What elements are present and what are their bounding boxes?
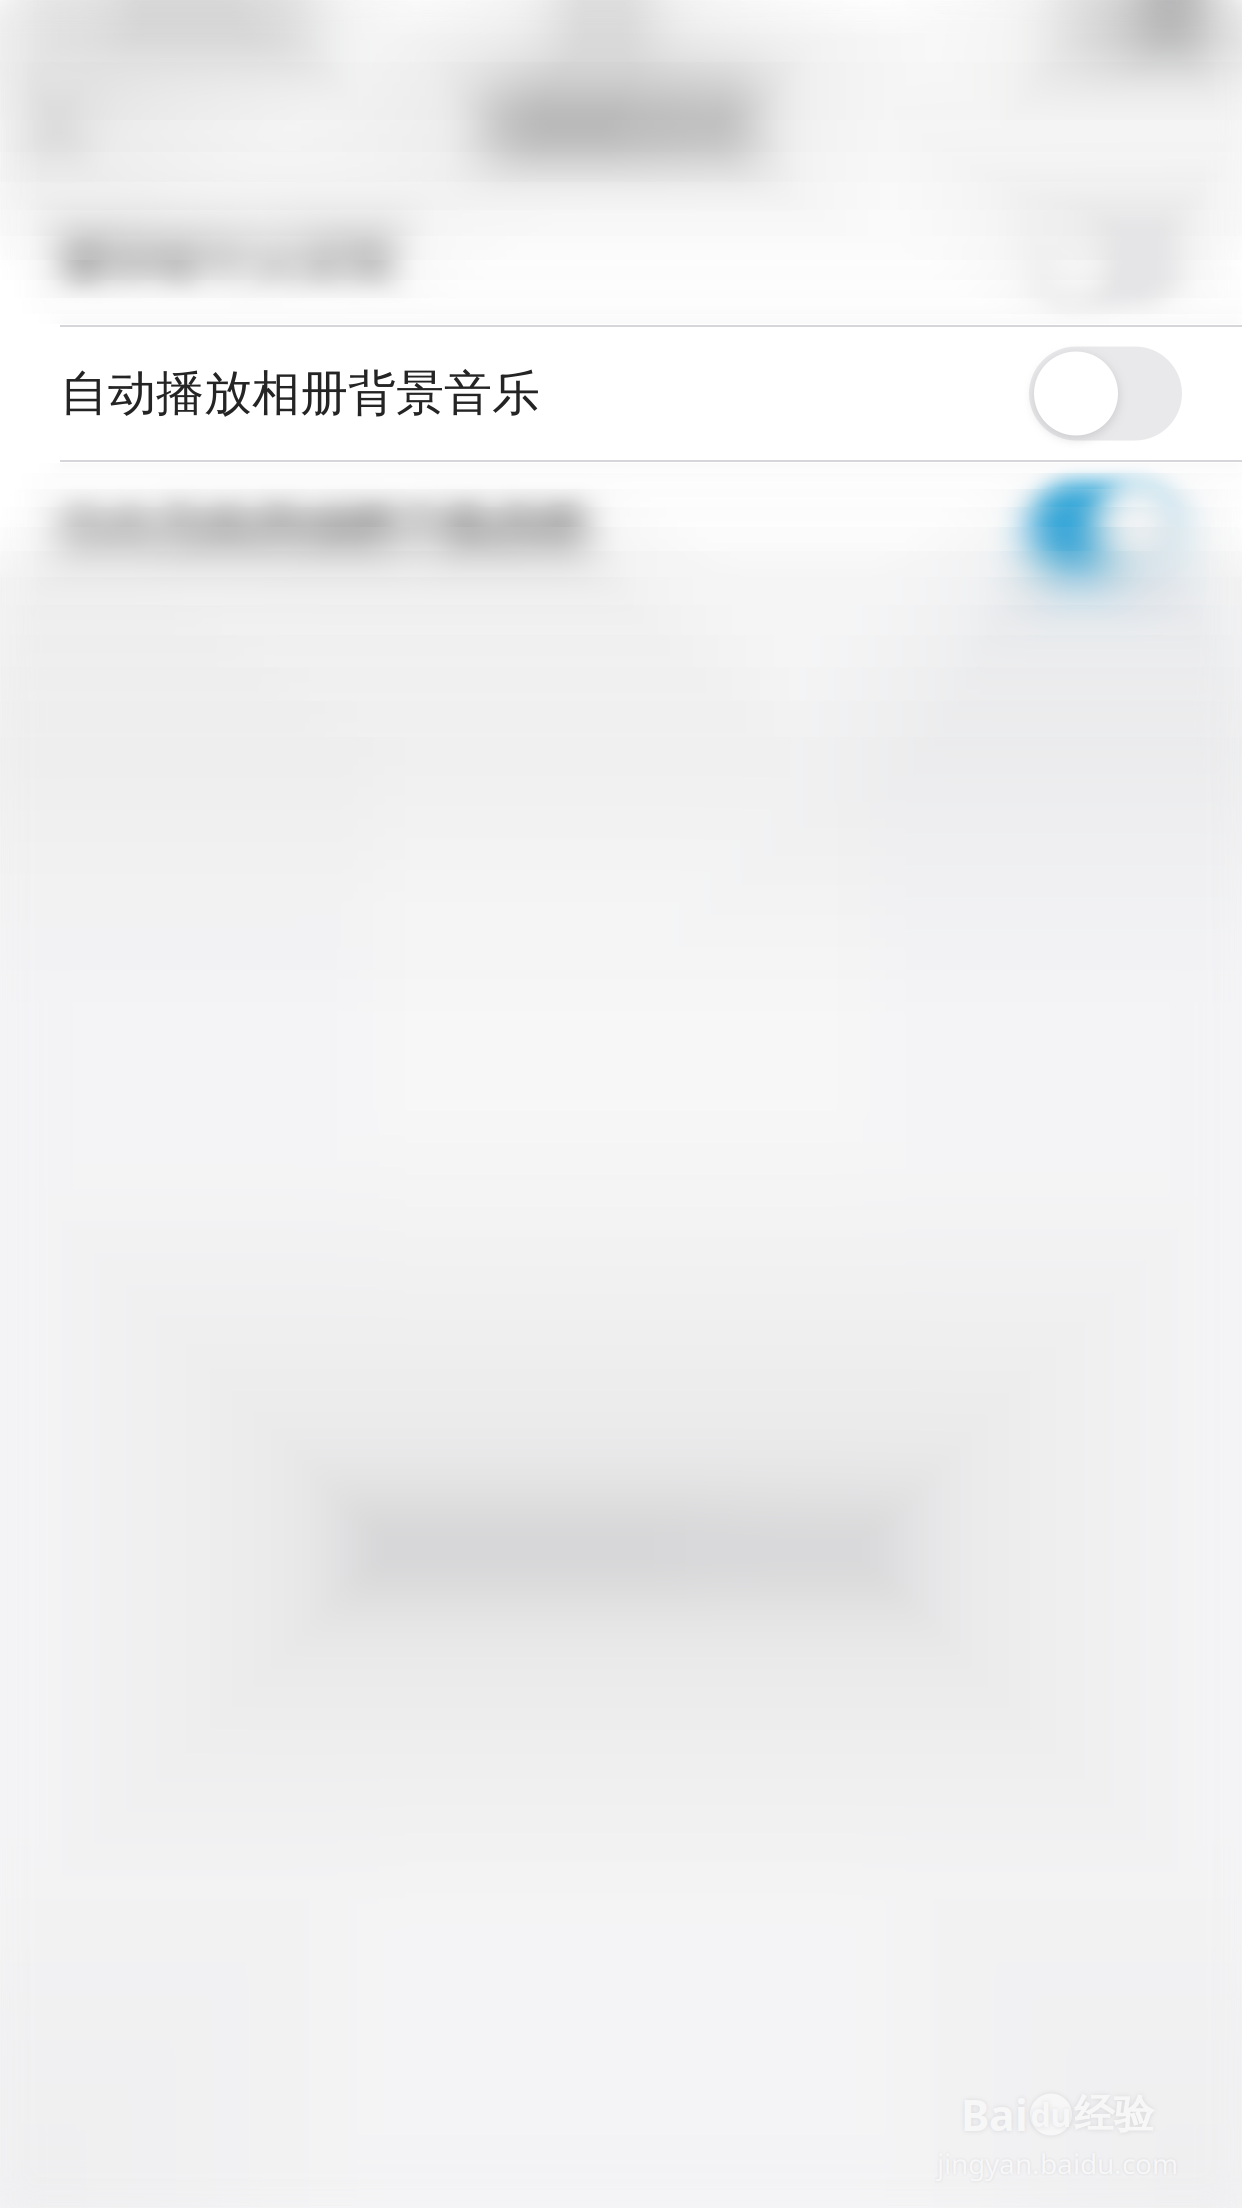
staticText: 76% [1064, 7, 1133, 53]
button[interactable]: Back [0, 60, 100, 190]
staticText: 相册设置 [487, 84, 755, 166]
staticText: du [1030, 2093, 1071, 2136]
button[interactable]: 自动播放相册背景音乐 [0, 327, 1242, 460]
button[interactable]: 仅在无线局域网下载原图 [0, 462, 1242, 595]
staticText: 自动播放相册背景音乐 [60, 364, 540, 423]
button[interactable]: 显示在个人主页 [0, 192, 1242, 325]
staticText: jingyan.baidu.com [937, 2145, 1178, 2182]
staticText: 经验 [1074, 2090, 1154, 2139]
staticText: 显示在个人主页 [60, 229, 396, 288]
staticText: 仅在无线局域网下载原图 [60, 499, 588, 558]
staticText: Bai [961, 2086, 1028, 2143]
